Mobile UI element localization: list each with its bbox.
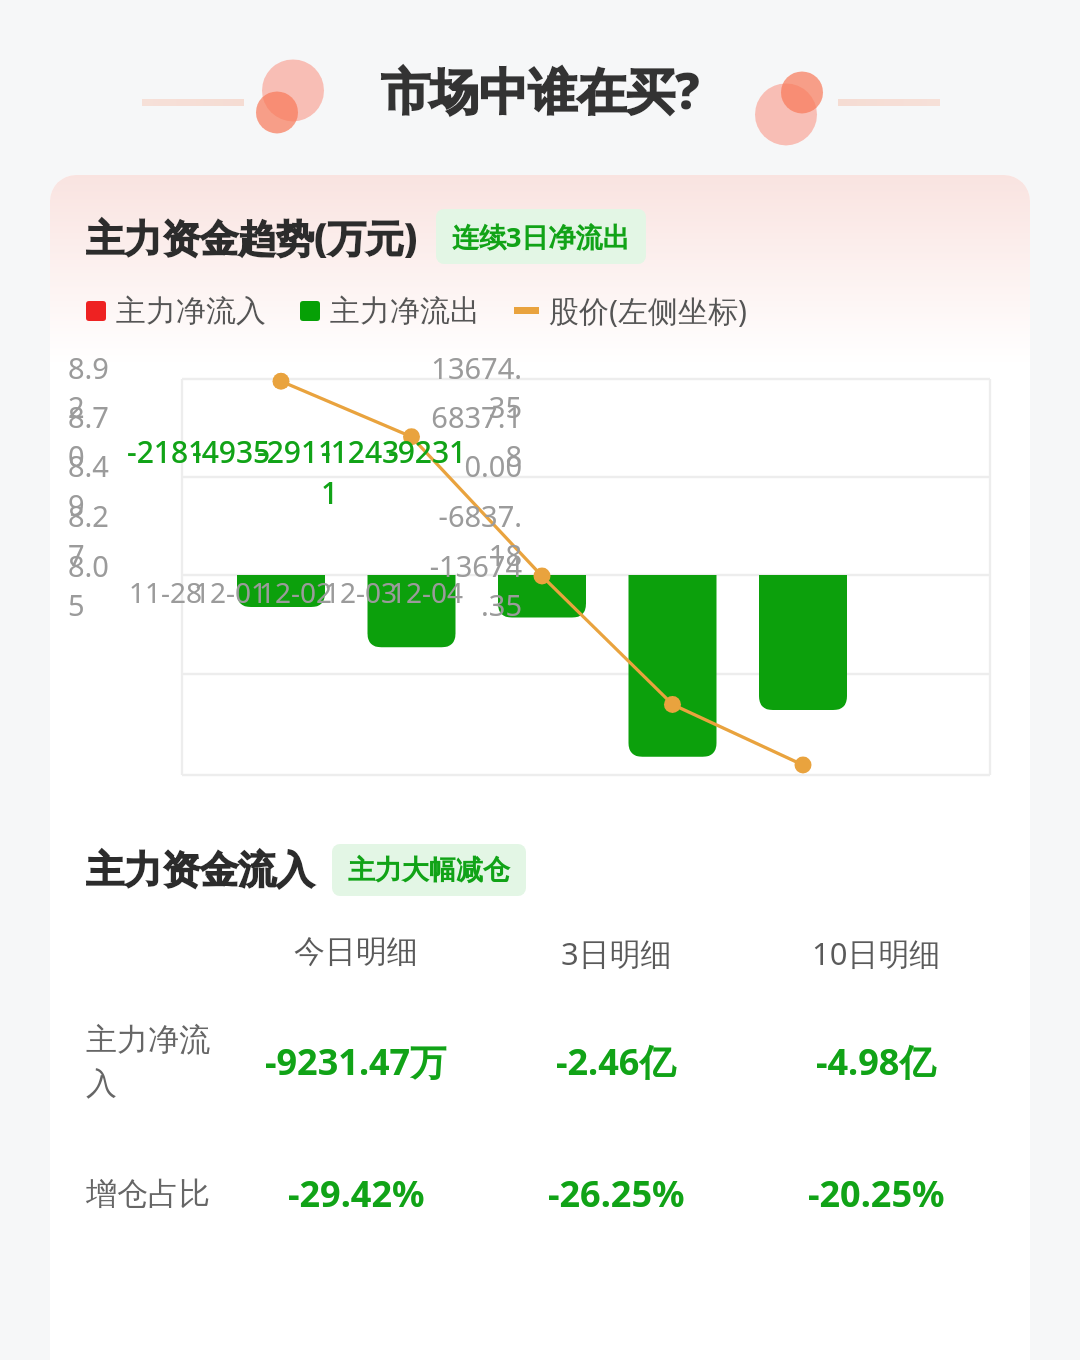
staticText: 主力净流出 bbox=[330, 292, 480, 330]
staticText: 今日明细 bbox=[294, 932, 418, 971]
staticText: 10日明细 bbox=[812, 932, 941, 974]
staticText: 增仓占比 bbox=[86, 1174, 210, 1213]
staticText: -2.46亿 bbox=[556, 1037, 676, 1086]
staticText: -9231.47万 bbox=[265, 1037, 447, 1086]
staticText: -6837.18 bbox=[428, 496, 522, 574]
staticText: 主力净流入 bbox=[86, 1020, 226, 1103]
staticText: 市场中谁在买? bbox=[381, 57, 700, 124]
staticText: 连续3日净流出 bbox=[452, 218, 630, 255]
staticText: 6837.18 bbox=[428, 397, 522, 475]
button[interactable]: 连续3日净流出 bbox=[436, 209, 646, 264]
staticText: 8.70 bbox=[68, 397, 116, 475]
staticText: -20.25% bbox=[808, 1169, 945, 1218]
staticText: 股价(左侧坐标) bbox=[549, 290, 747, 331]
staticText: 主力资金趋势(万元) bbox=[86, 211, 418, 263]
staticText: 8.27 bbox=[68, 496, 116, 574]
staticText: 12-01 bbox=[194, 573, 268, 611]
staticText: 11-28 bbox=[129, 573, 203, 611]
staticText: 主力资金流入 bbox=[86, 846, 314, 894]
staticText: 3日明细 bbox=[561, 932, 672, 974]
staticText: -12431 bbox=[321, 431, 401, 513]
staticText: -4.98亿 bbox=[816, 1037, 936, 1086]
staticText: 8.05 bbox=[68, 546, 116, 624]
staticText: 12-03 bbox=[324, 573, 398, 611]
staticText: -29.42% bbox=[288, 1169, 425, 1218]
staticText: -4935 bbox=[192, 431, 271, 472]
staticText: 12-04 bbox=[390, 573, 464, 611]
staticText: -13674.35 bbox=[428, 546, 522, 624]
button[interactable]: 主力大幅减仓 bbox=[332, 844, 526, 896]
staticText: 主力净流入 bbox=[116, 292, 266, 330]
staticText: -2911 bbox=[257, 431, 336, 472]
staticText: 0.00 bbox=[464, 446, 522, 485]
staticText: 8.49 bbox=[68, 446, 116, 524]
staticText: 12-02 bbox=[259, 573, 333, 611]
staticText: 8.92 bbox=[68, 348, 116, 426]
staticText: -2181 bbox=[127, 431, 206, 472]
staticText: 主力大幅减仓 bbox=[348, 853, 510, 887]
staticText: -26.25% bbox=[548, 1169, 685, 1218]
staticText: -9231 bbox=[388, 431, 467, 472]
staticText: 13674.35 bbox=[428, 348, 522, 426]
